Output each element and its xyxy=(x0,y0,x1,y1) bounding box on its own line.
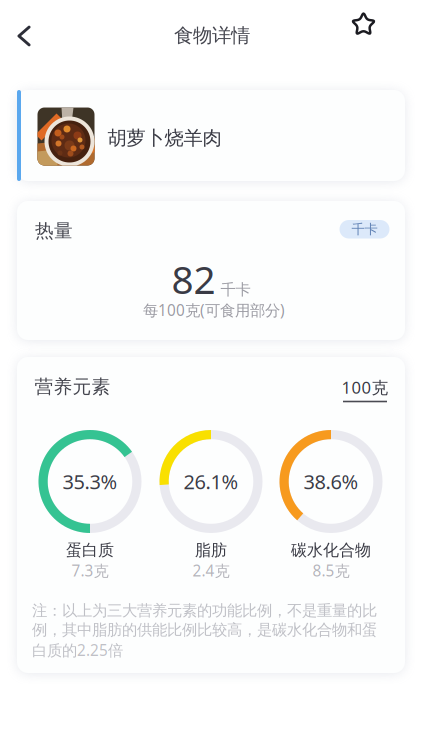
staticText: 每100克(可食用部分) xyxy=(143,300,285,320)
staticText: 35.3% xyxy=(62,468,117,495)
staticText: 食物详情 xyxy=(174,23,250,48)
staticText: 82 xyxy=(171,253,215,305)
button[interactable]: 100克 xyxy=(339,376,391,400)
staticText: 7.3克 xyxy=(71,560,108,581)
staticText: 碳水化合物 xyxy=(291,540,371,560)
button[interactable]: Favorite xyxy=(341,2,385,46)
staticText: 脂肪 xyxy=(195,540,227,560)
staticText: 26.1% xyxy=(183,468,238,495)
staticText: 2.4克 xyxy=(192,560,229,581)
staticText: 千卡 xyxy=(351,221,377,238)
staticText: 38.6% xyxy=(303,468,358,495)
staticText: 热量 xyxy=(35,219,73,242)
staticText: 千卡 xyxy=(220,280,250,299)
staticText: 营养元素 xyxy=(34,375,110,398)
staticText: 胡萝卜烧羊肉 xyxy=(107,126,221,150)
staticText: 蛋白质 xyxy=(66,540,114,560)
staticText: 8.5克 xyxy=(312,560,349,581)
staticText: 100克 xyxy=(341,376,388,399)
staticText: 注：以上为三大营养元素的功能比例，不是重量的比例，其中脂肪的供能比例比较高，是碳… xyxy=(32,601,377,660)
button[interactable]: Back xyxy=(1,13,47,59)
